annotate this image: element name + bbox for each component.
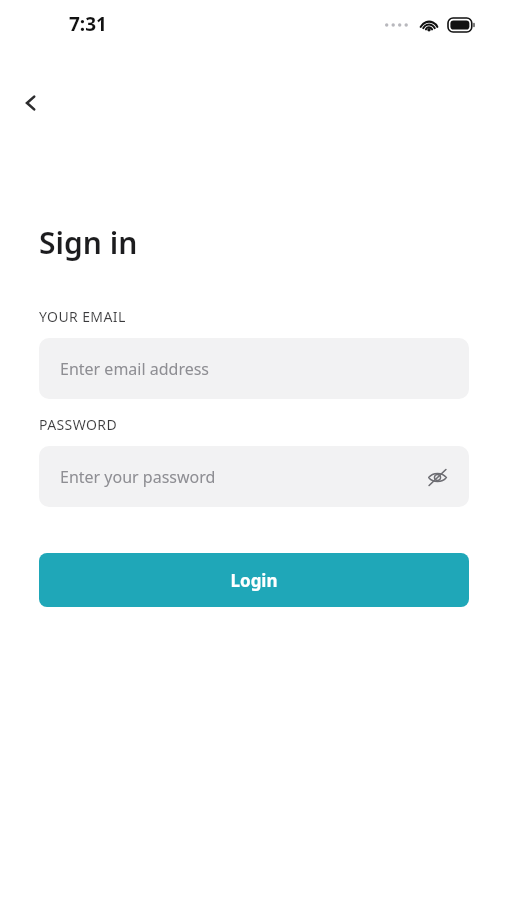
- staticText: Sign in: [39, 222, 138, 263]
- staticText: Enter email address: [60, 358, 210, 380]
- button[interactable]: Back: [13, 85, 49, 121]
- button[interactable]: Enter email address: [39, 338, 469, 399]
- staticText: YOUR EMAIL: [39, 307, 126, 326]
- staticText: PASSWORD: [39, 415, 118, 434]
- button[interactable]: Enter your password: [39, 446, 469, 507]
- staticText: 7:31: [69, 11, 107, 37]
- staticText: Login: [230, 569, 278, 592]
- staticText: Enter your password: [60, 466, 216, 488]
- button[interactable]: Login: [39, 553, 469, 607]
- button[interactable]: Show password: [423, 463, 451, 491]
